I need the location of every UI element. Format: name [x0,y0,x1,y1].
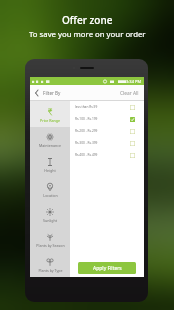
staticText: Rs.100 - Rs.199 [75,117,98,121]
staticText: Price Range [40,118,60,123]
button[interactable]: Sunlight [30,202,70,227]
button[interactable]: Apply Filters [78,262,136,274]
staticText: Rs.300 - Rs.399 [75,141,98,145]
button[interactable]: Rs.100 - Rs.199 [70,113,144,125]
staticText: Apply Filters [93,265,122,272]
staticText: Plants by Season [36,243,65,248]
button[interactable]: Location [30,177,70,202]
staticText: Sunlight [43,218,57,223]
button[interactable]: Rs.400 - Rs.499 [70,149,144,161]
staticText: Maintenance [39,143,61,148]
button[interactable]: Back [30,85,43,101]
button[interactable]: Maintenance [30,127,70,152]
staticText: Plants by Type [38,268,63,273]
button[interactable]: Plants by Type [30,252,70,277]
staticText: Filter By [43,90,61,96]
button[interactable]: Plants by Season [30,227,70,252]
staticText: Height [44,168,56,173]
staticText: Offer zone [62,13,113,27]
staticText: Rs.400 - Rs.499 [75,153,98,157]
staticText: Rs.200 - Rs.299 [75,129,98,133]
staticText: 3:34 PM [126,79,142,84]
button[interactable]: Rs.300 - Rs.399 [70,137,144,149]
button[interactable]: Rs.200 - Rs.299 [70,125,144,137]
staticText: Location [43,193,58,198]
button[interactable]: Clear All [115,85,144,101]
staticText: Clear All [120,90,139,97]
staticText: To save you more on your order [29,29,146,40]
button[interactable]: Height [30,152,70,177]
button[interactable]: Price Range [30,101,70,127]
staticText: less than Rs.99 [75,105,98,109]
button[interactable]: less than Rs.99 [70,101,144,113]
